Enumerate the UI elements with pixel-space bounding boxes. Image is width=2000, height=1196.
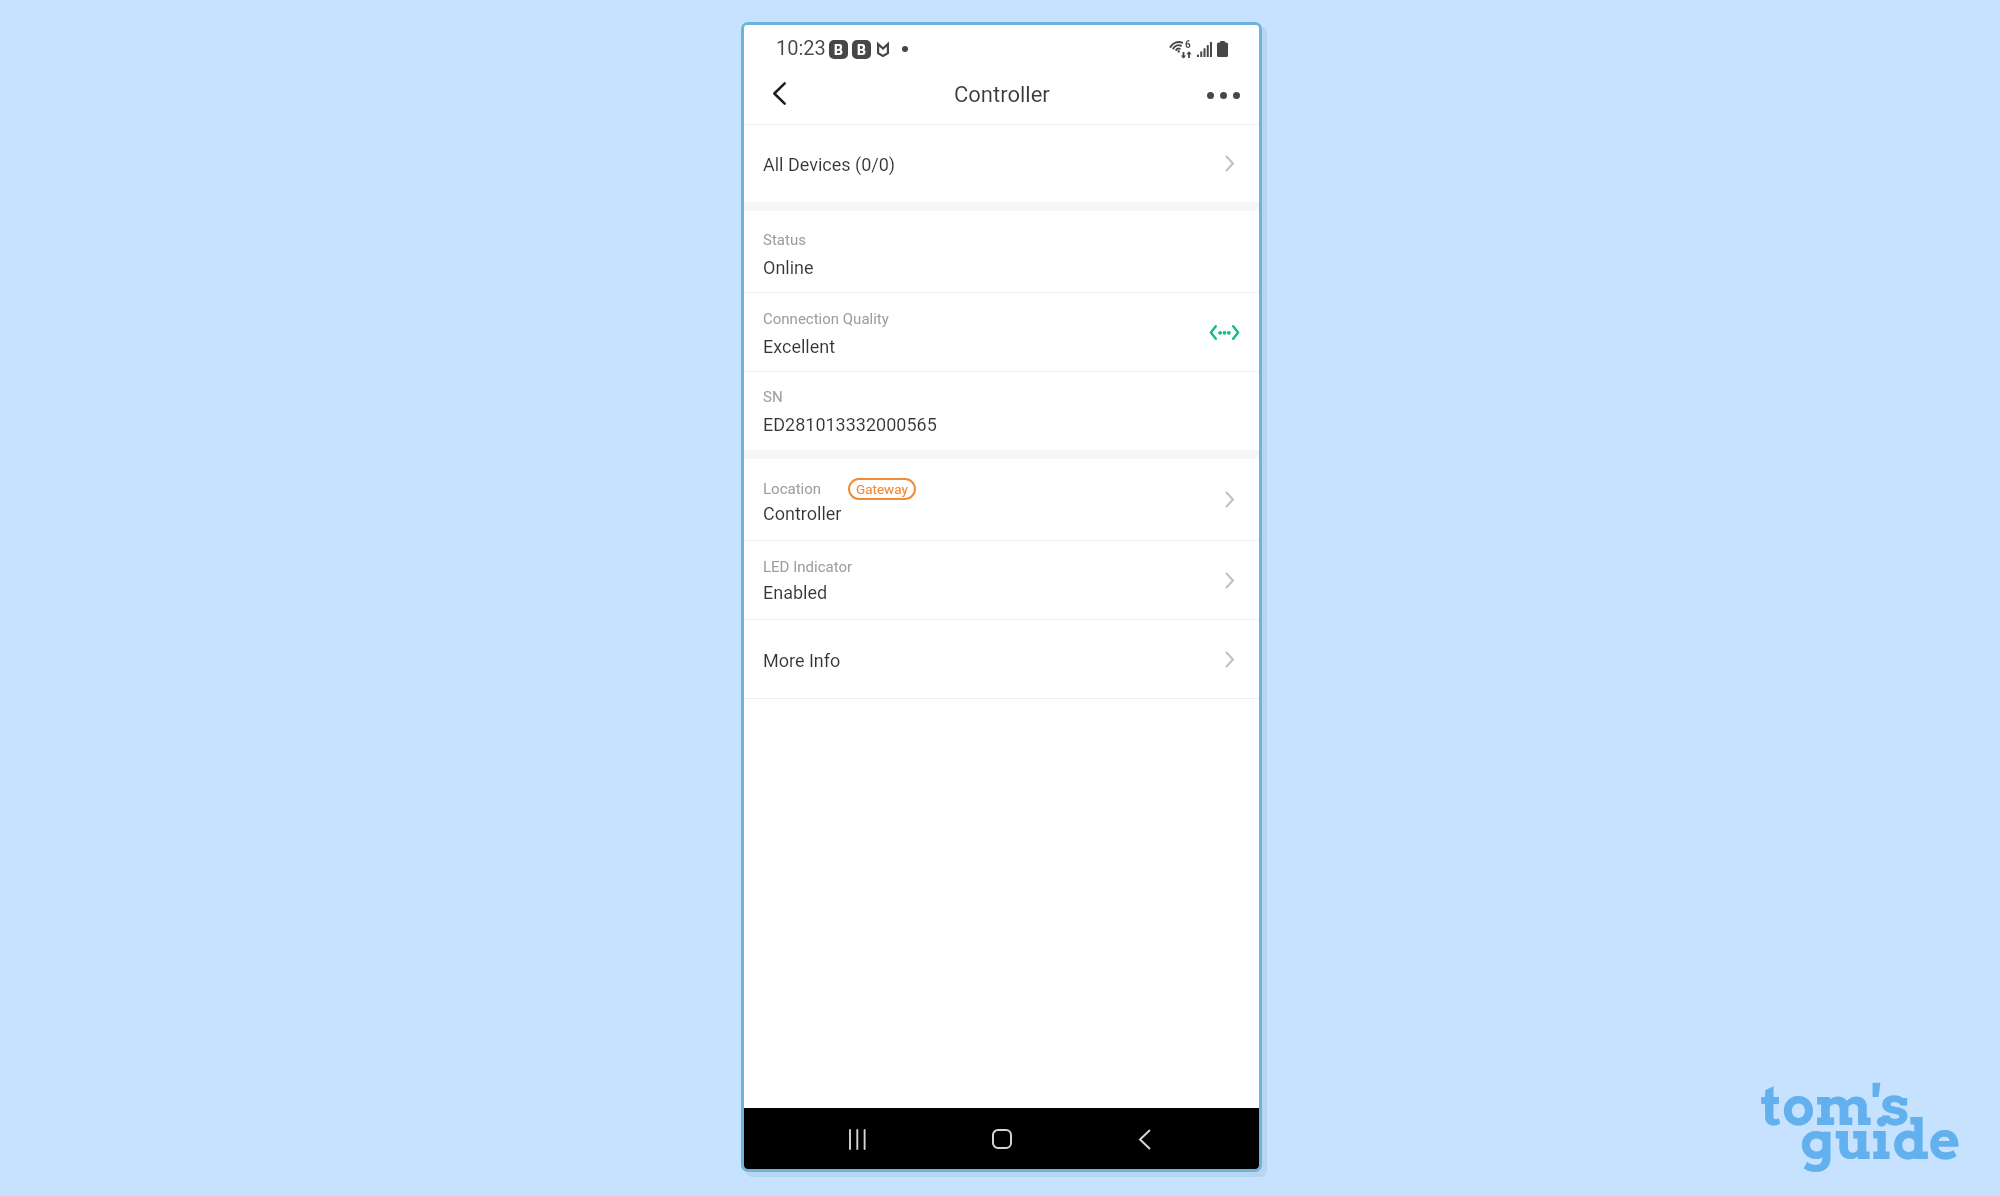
staticText: Gateway — [856, 481, 908, 497]
staticText: SN — [763, 388, 783, 406]
staticText: 10:23 — [776, 36, 826, 59]
button[interactable]: Back — [752, 67, 806, 120]
staticText: Enabled — [763, 582, 828, 603]
button[interactable]: Home — [972, 1109, 1032, 1169]
button[interactable]: More options — [1196, 69, 1250, 122]
staticText: All Devices (0/0) — [763, 154, 896, 175]
staticText: B — [834, 42, 843, 58]
staticText: More Info — [763, 650, 841, 671]
staticText: ED281013332000565 — [763, 414, 937, 435]
button[interactable]: More Info — [744, 620, 1259, 698]
staticText: Location — [763, 480, 822, 498]
button[interactable]: Status — [744, 211, 1259, 292]
button[interactable]: Back — [1115, 1109, 1175, 1169]
staticText: Controller — [954, 82, 1050, 108]
button[interactable]: All Devices (0/0) — [744, 125, 1259, 202]
button[interactable]: Recents — [828, 1109, 888, 1169]
staticText: Connection Quality — [763, 310, 889, 328]
button[interactable]: LED Indicator — [744, 541, 1259, 619]
staticText: tom's — [1761, 1073, 1910, 1138]
staticText: 6 — [1185, 39, 1191, 51]
button[interactable]: Connection Quality — [744, 293, 1259, 371]
staticText: Excellent — [763, 336, 836, 357]
staticText: Status — [763, 231, 806, 249]
staticText: guide — [1800, 1107, 1961, 1172]
button[interactable]: SN — [744, 372, 1259, 450]
staticText: Controller — [763, 503, 842, 524]
button[interactable]: Location — [744, 459, 1259, 540]
staticText: Online — [763, 257, 814, 278]
staticText: B — [857, 42, 866, 58]
staticText: LED Indicator — [763, 558, 853, 576]
